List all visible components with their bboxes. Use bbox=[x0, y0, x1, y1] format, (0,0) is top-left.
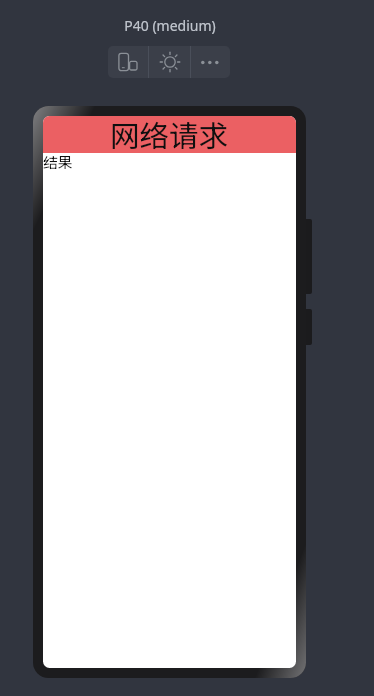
staticText: 结果 bbox=[43, 151, 73, 172]
button[interactable]: Change device or orientation bbox=[108, 46, 148, 78]
staticText: P40 (medium) bbox=[124, 16, 216, 35]
staticText: 网络请求 bbox=[110, 116, 229, 150]
button[interactable]: More options bbox=[191, 46, 230, 78]
button[interactable]: Toggle light and dark theme bbox=[149, 46, 190, 78]
